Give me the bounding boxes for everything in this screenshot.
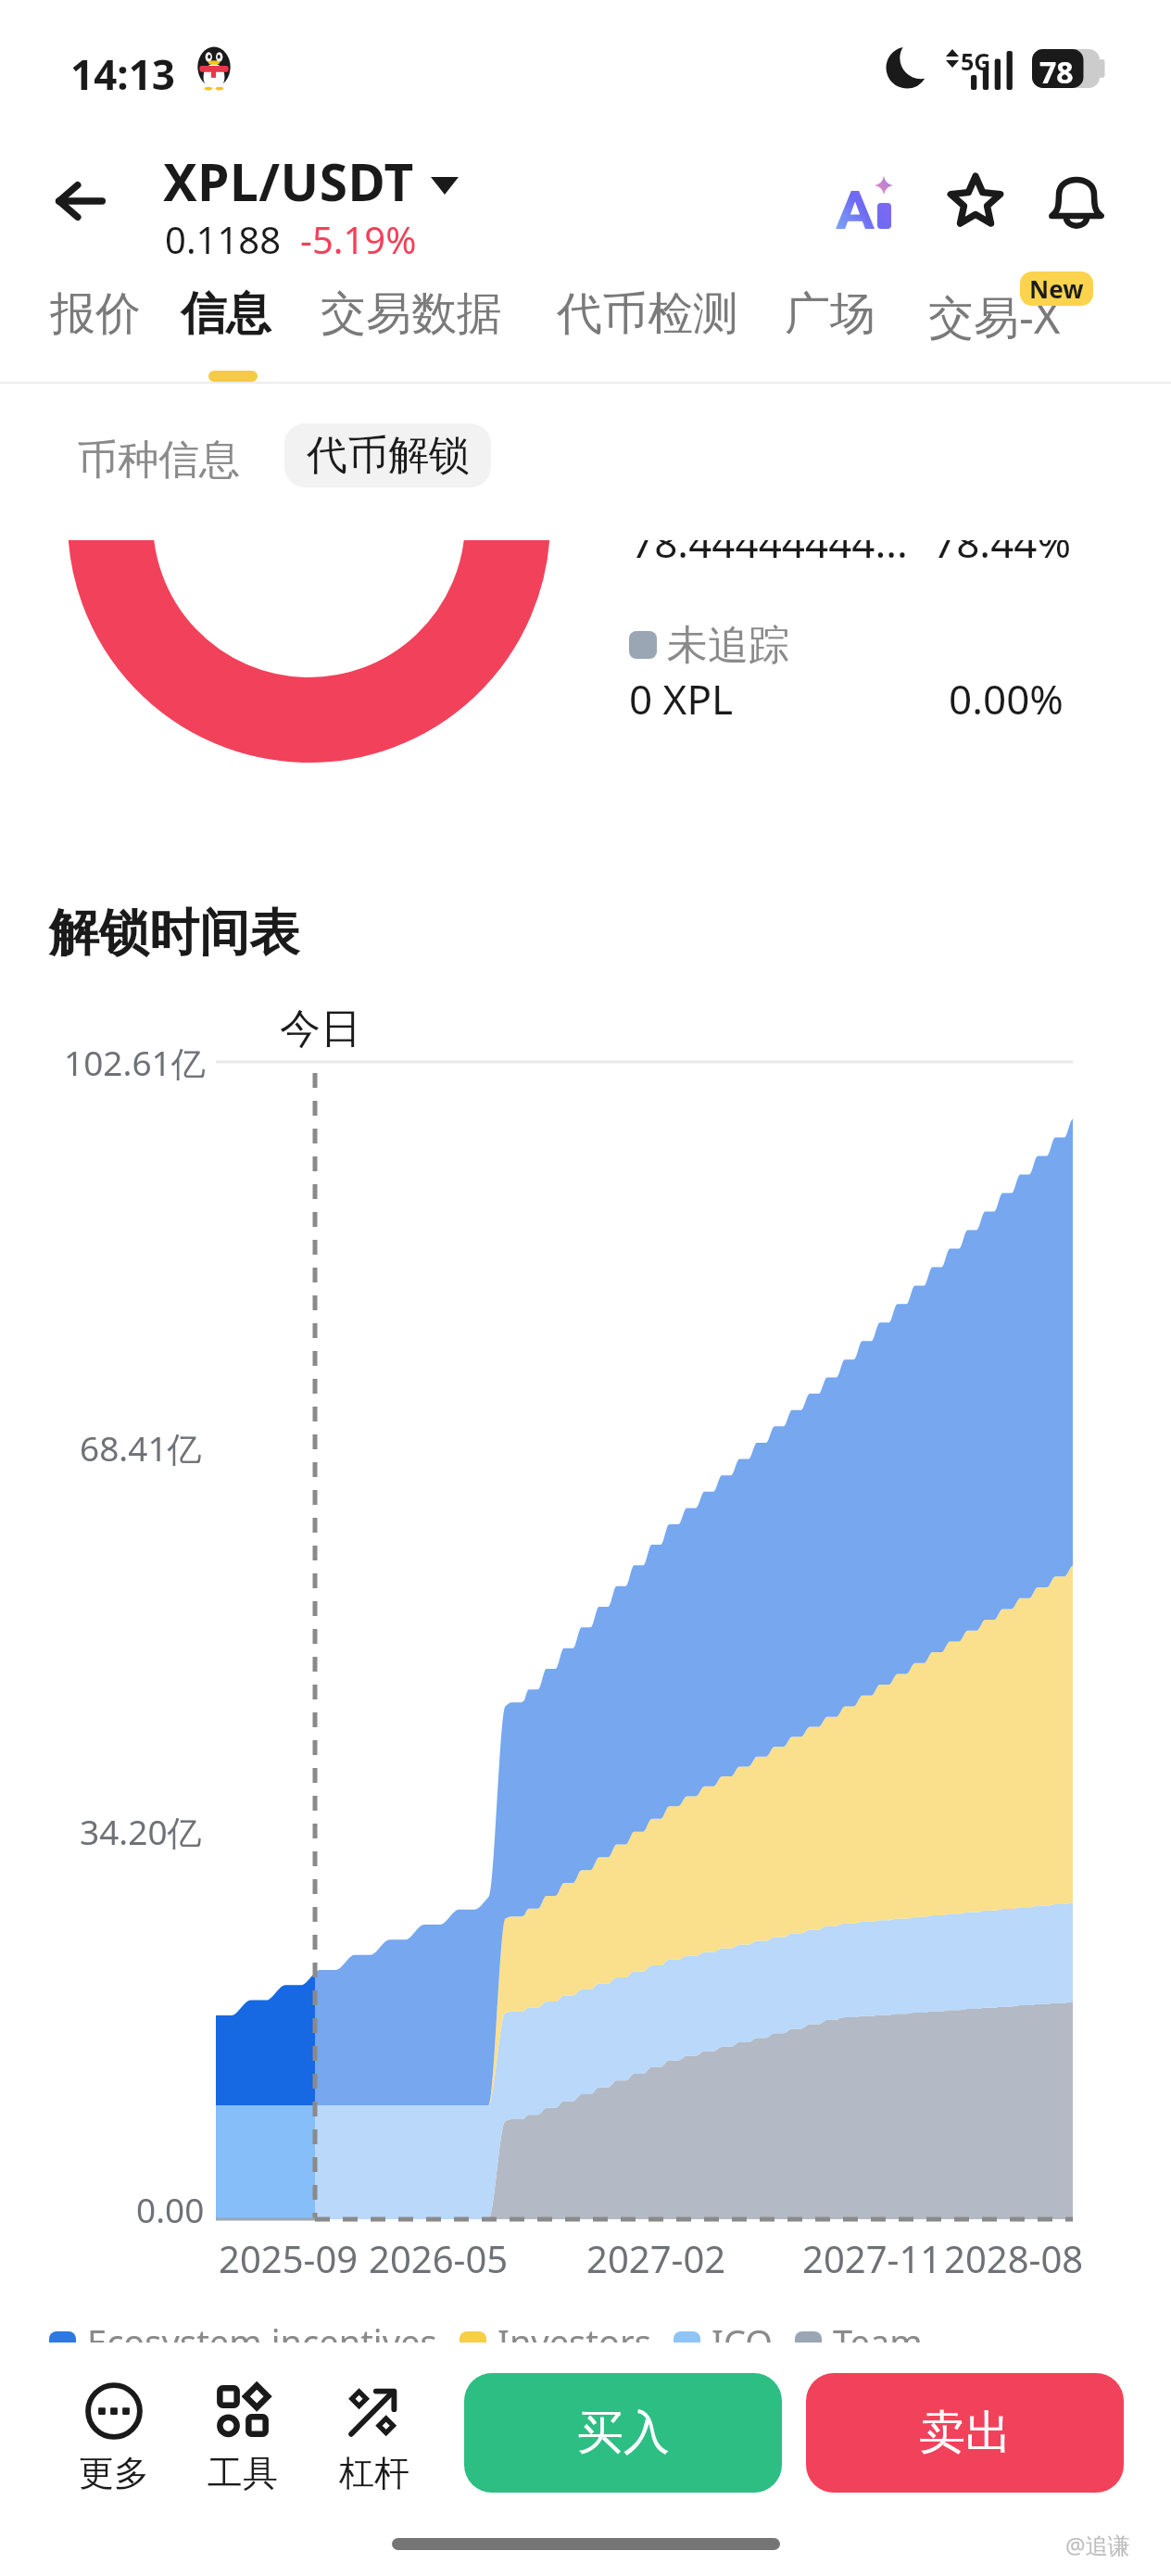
staticText: 0 XPL bbox=[629, 671, 734, 726]
staticText: 0.1188 bbox=[165, 214, 282, 264]
staticText: 交易数据 bbox=[321, 285, 502, 343]
staticText: 78.44% bbox=[933, 540, 1072, 570]
staticText: Team bbox=[833, 2317, 923, 2366]
staticText: 未追踪 bbox=[667, 620, 789, 671]
staticText: 78.44444444... bbox=[631, 540, 908, 570]
staticText: 0.00% bbox=[949, 671, 1064, 726]
staticText: 今日 bbox=[280, 1004, 361, 1054]
button[interactable]: 报价 bbox=[40, 274, 151, 376]
staticText: @追谦 bbox=[1065, 2530, 1130, 2560]
staticText: 34.20亿 bbox=[80, 1808, 202, 1855]
button[interactable]: 工具 bbox=[191, 2382, 295, 2495]
staticText: 币种信息 bbox=[77, 435, 240, 486]
staticText: 杠杆 bbox=[339, 2451, 409, 2495]
button[interactable]: AI assistant bbox=[815, 158, 908, 239]
button[interactable]: 广场 bbox=[774, 274, 886, 376]
staticText: 2027-11 bbox=[802, 2233, 942, 2283]
staticText: Investors bbox=[497, 2317, 651, 2366]
staticText: 报价 bbox=[50, 285, 141, 343]
button[interactable]: Favorite bbox=[929, 155, 1022, 247]
button[interactable]: 代币检测 bbox=[550, 274, 745, 376]
staticText: 广场 bbox=[785, 285, 875, 343]
button[interactable]: 更多 bbox=[62, 2382, 166, 2495]
button[interactable]: 交易数据 bbox=[314, 274, 509, 376]
staticText: Ecosystem incentives bbox=[87, 2317, 437, 2366]
button[interactable]: 交易-X bbox=[915, 274, 1073, 376]
staticText: 2025-09 bbox=[219, 2233, 359, 2283]
staticText: 2027-02 bbox=[586, 2233, 726, 2283]
staticText: 14:13 bbox=[70, 46, 176, 102]
button[interactable]: 代币解锁 bbox=[284, 423, 491, 487]
staticText: 5G bbox=[961, 45, 991, 77]
button[interactable]: 杠杆 bbox=[322, 2382, 426, 2495]
button[interactable]: XPL/USDT bbox=[163, 146, 459, 216]
staticText: 代币检测 bbox=[557, 285, 738, 343]
staticText: 2028-08 bbox=[944, 2233, 1084, 2283]
staticText: 买入 bbox=[577, 2404, 670, 2462]
staticText: -5.19% bbox=[300, 214, 417, 264]
staticText: New bbox=[1029, 272, 1084, 305]
staticText: 0.00 bbox=[136, 2186, 205, 2232]
button[interactable]: 币种信息 bbox=[60, 423, 257, 497]
staticText: 代币解锁 bbox=[307, 430, 470, 481]
staticText: 2026-05 bbox=[369, 2233, 509, 2283]
staticText: ICO bbox=[711, 2317, 773, 2366]
button[interactable]: Notifications bbox=[1030, 153, 1123, 246]
staticText: 工具 bbox=[208, 2451, 278, 2495]
button[interactable]: 卖出 bbox=[806, 2373, 1124, 2493]
staticText: 78 bbox=[1039, 52, 1074, 91]
staticText: 更多 bbox=[79, 2451, 149, 2495]
staticText: 卖出 bbox=[919, 2404, 1012, 2462]
staticText: 信息 bbox=[181, 285, 271, 343]
staticText: 交易-X bbox=[928, 285, 1061, 347]
staticText: 102.61亿 bbox=[64, 1039, 206, 1086]
staticText: XPL/USDT bbox=[163, 146, 414, 216]
staticText: 68.41亿 bbox=[80, 1424, 202, 1471]
staticText: 解锁时间表 bbox=[49, 902, 299, 965]
button[interactable]: 买入 bbox=[464, 2373, 782, 2493]
button[interactable]: 信息 bbox=[170, 274, 282, 376]
button[interactable]: Back bbox=[30, 150, 132, 252]
